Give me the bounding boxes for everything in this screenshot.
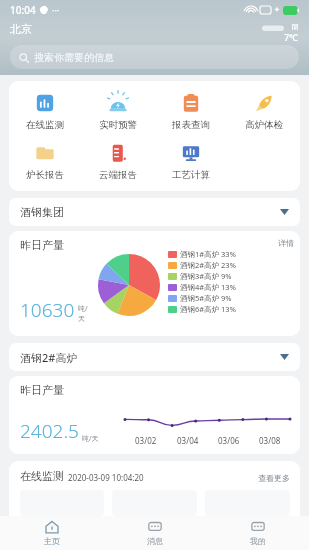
- staticText: 实时预警: [99, 119, 137, 131]
- staticText: 2020-03-09 10:04:20: [68, 472, 144, 483]
- staticText: 消息: [147, 536, 163, 546]
- staticText: 高炉体检: [245, 119, 283, 131]
- button[interactable]: 工艺计算: [154, 139, 227, 183]
- staticText: 酒钢2#高炉 23%: [180, 260, 236, 270]
- button[interactable]: 实时预警: [81, 89, 154, 133]
- staticText: 主页: [44, 536, 60, 546]
- staticText: 酒钢2#高炉: [20, 350, 78, 365]
- button[interactable]: 查看更多: [258, 473, 290, 483]
- button[interactable]: 消息: [103, 516, 206, 550]
- staticText: 阴: [292, 22, 299, 31]
- button[interactable]: 报表查询: [154, 89, 227, 133]
- button[interactable]: 炉长报告: [9, 139, 81, 183]
- staticText: 吨/天: [78, 304, 90, 323]
- staticText: 03/02: [135, 435, 157, 446]
- staticText: 7℃: [284, 31, 299, 43]
- staticText: 10:04: [10, 3, 36, 17]
- staticText: 北京: [10, 22, 32, 36]
- staticText: 在线监测: [20, 469, 64, 483]
- staticText: 云端报告: [99, 169, 137, 181]
- staticText: 工艺计算: [172, 169, 210, 181]
- button[interactable]: 详情: [278, 238, 294, 248]
- staticText: 昨日产量: [20, 383, 64, 397]
- staticText: 酒钢集团: [20, 205, 64, 219]
- staticText: 搜索你需要的信息: [34, 51, 114, 64]
- staticText: 我的: [250, 536, 266, 546]
- button[interactable]: 酒钢集团: [9, 198, 300, 226]
- button[interactable]: 我的: [206, 516, 309, 550]
- staticText: 酒钢3#高炉 9%: [180, 271, 232, 281]
- staticText: 昨日产量: [20, 238, 64, 252]
- staticText: 炉长报告: [26, 169, 64, 181]
- staticText: 报表查询: [172, 119, 210, 131]
- button[interactable]: 云端报告: [81, 139, 154, 183]
- staticText: 酒钢4#高炉 13%: [180, 282, 236, 292]
- staticText: ✦: [274, 6, 280, 14]
- staticText: 酒钢1#高炉 33%: [180, 249, 236, 259]
- staticText: 03/08: [259, 435, 281, 446]
- staticText: 2402.5: [20, 418, 79, 444]
- button[interactable]: 在线监测: [9, 89, 81, 133]
- staticText: 10630: [20, 297, 75, 323]
- button[interactable]: 搜索你需要的信息: [10, 45, 299, 69]
- staticText: 03/06: [218, 435, 240, 446]
- staticText: ···: [52, 4, 60, 16]
- button[interactable]: 高炉体检: [227, 89, 300, 133]
- button[interactable]: 主页: [0, 516, 103, 550]
- staticText: 在线监测: [26, 119, 64, 131]
- button[interactable]: 酒钢2#高炉: [9, 343, 300, 371]
- staticText: 吨/天: [82, 434, 99, 444]
- staticText: 03/04: [177, 435, 199, 446]
- staticText: 酒钢5#高炉 9%: [180, 293, 232, 303]
- staticText: 酒钢6#高炉 13%: [180, 304, 236, 314]
